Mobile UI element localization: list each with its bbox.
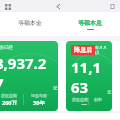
button[interactable]: Menu (3, 2, 12, 11)
staticText: 200万 (72, 103, 87, 105)
staticText: 降息后 (74, 46, 92, 54)
staticText: 还款年限 (31, 93, 47, 98)
button[interactable]: 降息后 (66, 41, 112, 111)
staticText: 30年 (33, 99, 45, 105)
staticText: 贷款总额 (72, 97, 88, 102)
staticText: 等额本息 (78, 19, 102, 27)
staticText: 200万 (2, 99, 17, 105)
button[interactable]: 月供已经 (0, 41, 58, 111)
staticText: 利率 (94, 97, 102, 102)
staticText: 月供已经 (0, 45, 13, 51)
staticText: 8,937.27 (0, 53, 53, 93)
button[interactable]: 等额本息 (60, 12, 120, 36)
staticText: 每月月供 (95, 45, 107, 55)
staticText: 11,163 (71, 57, 107, 97)
button[interactable]: Back (53, 1, 64, 12)
staticText: 贷款总额 (1, 93, 17, 98)
staticText: 等额本金 (18, 19, 42, 27)
button[interactable]: More (108, 2, 117, 11)
button[interactable]: 等额本金 (0, 12, 60, 36)
